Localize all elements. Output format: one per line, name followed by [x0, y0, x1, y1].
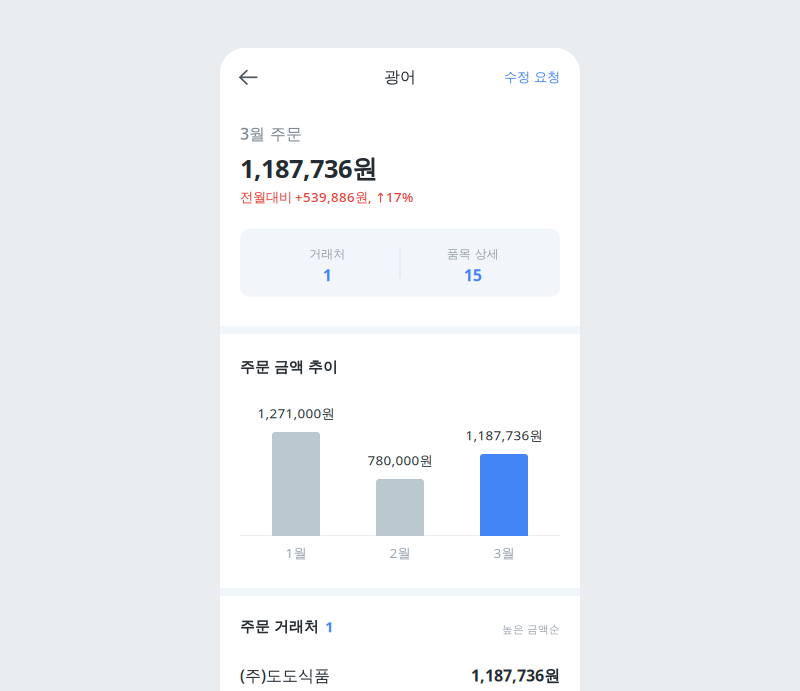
staticText: 광어: [384, 67, 416, 87]
button[interactable]: 수정 요청: [504, 48, 560, 106]
button[interactable]: 품목 상세: [400, 229, 545, 297]
staticText: (주)도도식품: [240, 665, 330, 686]
staticText: 1: [325, 617, 333, 636]
staticText: 1,187,736원: [240, 151, 377, 185]
staticText: 수정 요청: [504, 69, 560, 85]
staticText: 주문 금액 추이: [240, 358, 338, 376]
staticText: 1,187,736원: [471, 665, 560, 686]
staticText: 780,000원: [367, 451, 432, 469]
staticText: 2월: [389, 544, 410, 562]
button[interactable]: 거래처: [255, 229, 399, 297]
staticText: 1: [323, 264, 332, 285]
staticText: 주문 거래처: [240, 617, 319, 635]
staticText: 1,271,000원: [257, 404, 334, 422]
staticText: 1,187,736원: [465, 426, 542, 444]
staticText: 거래처: [309, 247, 345, 261]
staticText: 전월대비 +539,886원, ↑17%: [240, 188, 413, 206]
staticText: 15: [464, 264, 482, 285]
button[interactable]: 뒤로 가기: [239, 48, 271, 106]
staticText: 품목 상세: [447, 247, 499, 261]
staticText: 3월 주문: [240, 123, 302, 144]
staticText: 1월: [285, 544, 306, 562]
staticText: 3월: [493, 544, 514, 562]
button[interactable]: (주)도도식품: [240, 655, 560, 691]
staticText: 높은 금액순: [502, 623, 560, 636]
button[interactable]: 높은 금액순: [502, 620, 560, 633]
